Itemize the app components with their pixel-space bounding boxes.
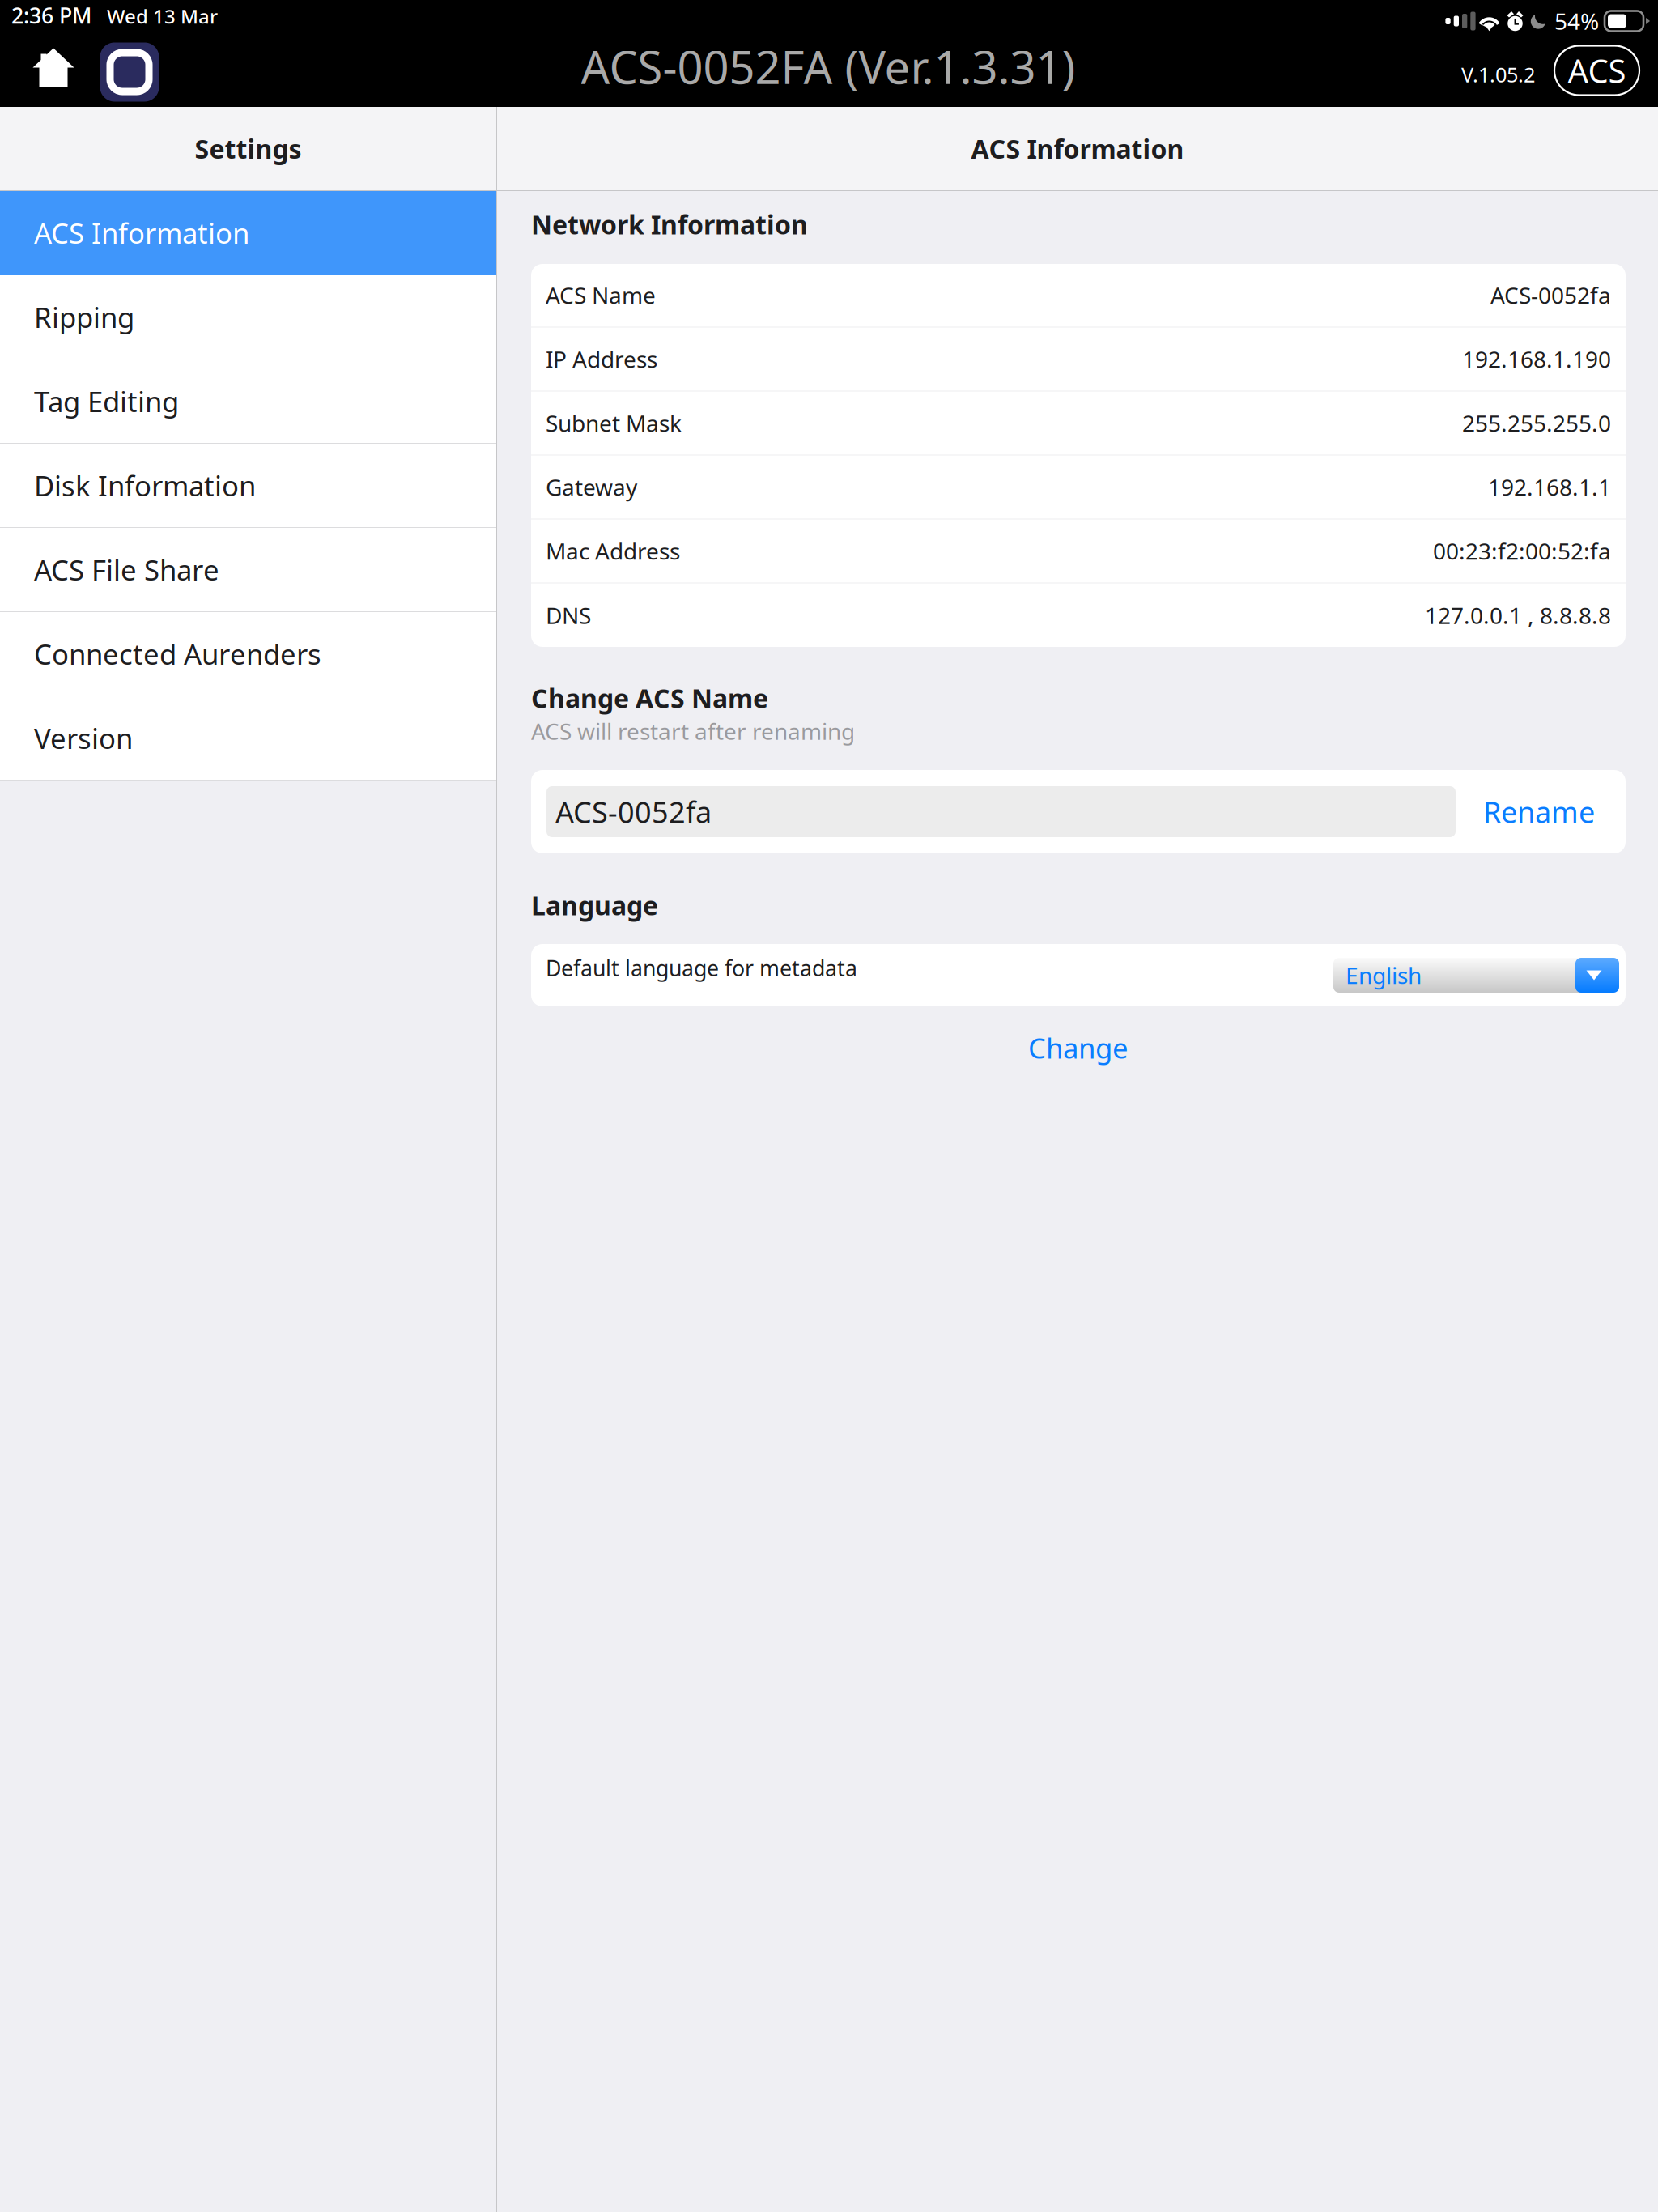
button[interactable]: ACS File Share	[0, 528, 496, 612]
staticText: 192.168.1.190	[1462, 344, 1611, 374]
staticText: ACS-0052fa	[555, 792, 712, 831]
staticText: ACS	[1568, 49, 1626, 92]
staticText: ACS-0052fa	[1490, 280, 1611, 310]
staticText: 192.168.1.1	[1488, 472, 1611, 502]
staticText: ACS Information	[34, 214, 249, 251]
staticText: Subnet Mask	[546, 408, 682, 438]
staticText: 127.0.0.1 , 8.8.8.8	[1425, 600, 1611, 630]
button[interactable]: Connected Aurenders	[0, 612, 496, 696]
staticText: Language	[531, 888, 658, 922]
button[interactable]: Change	[531, 1006, 1626, 1089]
button[interactable]: Rename	[1456, 770, 1622, 853]
staticText: 2:36 PM	[11, 1, 91, 30]
staticText: Gateway	[546, 472, 637, 502]
staticText: ACS-0052FA (Ver.1.3.31)	[581, 36, 1076, 97]
staticText: 00:23:f2:00:52:fa	[1433, 536, 1611, 566]
staticText: Tag Editing	[34, 383, 179, 420]
staticText: Wed 13 Mar	[107, 3, 218, 29]
button[interactable]: Version	[0, 696, 496, 781]
staticText: Disk Information	[34, 467, 256, 504]
staticText: Default language for metadata	[546, 954, 857, 982]
staticText: Mac Address	[546, 536, 680, 566]
staticText: Rename	[1483, 792, 1595, 831]
staticText: 255.255.255.0	[1462, 408, 1611, 438]
staticText: Change ACS Name	[531, 681, 768, 715]
button[interactable]: Ripping	[0, 275, 496, 359]
staticText: Network Information	[531, 207, 808, 242]
staticText: V.1.05.2	[1461, 61, 1535, 88]
button[interactable]: ACS	[1554, 50, 1639, 99]
staticText: ACS File Share	[34, 551, 219, 588]
button[interactable]: Home	[20, 42, 87, 107]
staticText: DNS	[546, 600, 591, 630]
staticText: Settings	[195, 131, 302, 166]
staticText: IP Address	[546, 344, 657, 374]
staticText: ACS Name	[546, 280, 656, 310]
staticText: Ripping	[34, 298, 134, 336]
button[interactable]: ACS Information	[0, 191, 496, 275]
staticText: ACS will restart after renaming	[531, 716, 855, 746]
staticText: Connected Aurenders	[34, 635, 321, 672]
staticText: ACS Information	[971, 131, 1184, 166]
button[interactable]: Disk Information	[0, 444, 496, 528]
staticText: English	[1346, 960, 1422, 990]
staticText: 54%	[1554, 6, 1599, 36]
button[interactable]: Tag Editing	[0, 359, 496, 444]
staticText: Change	[1028, 1029, 1129, 1066]
button[interactable]: English	[1333, 958, 1610, 993]
button[interactable]: Aurender	[87, 42, 166, 107]
staticText: Version	[34, 719, 133, 757]
